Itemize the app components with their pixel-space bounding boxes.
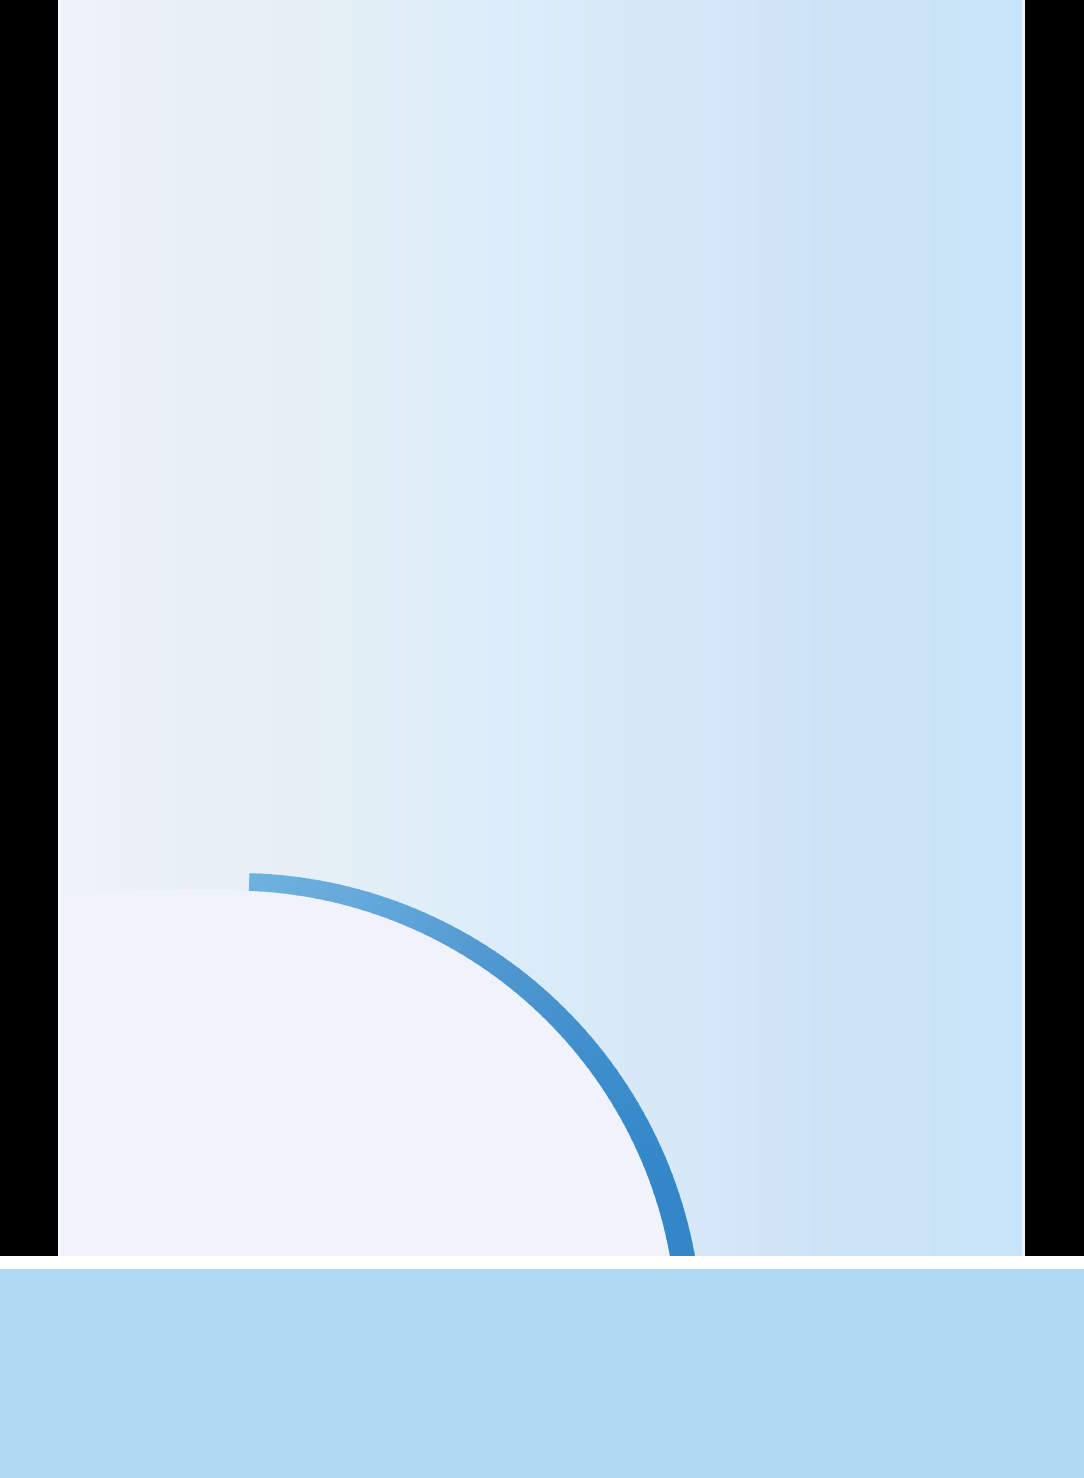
- button[interactable]: Progress ring: [0, 0, 1084, 1256]
